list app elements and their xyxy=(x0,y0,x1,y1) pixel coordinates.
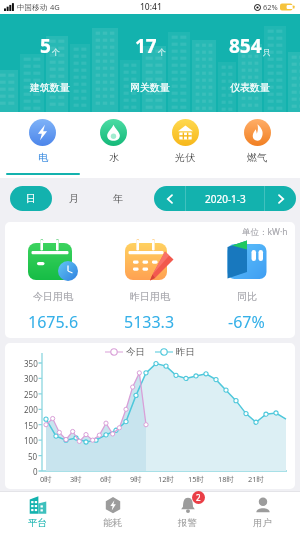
staticText: 1675.6 xyxy=(28,311,79,333)
staticText: 燃气 xyxy=(247,151,267,164)
staticText: 100 xyxy=(24,435,38,446)
staticText: 个 xyxy=(158,47,166,57)
staticText: 4G xyxy=(50,2,60,12)
staticText: 用户 xyxy=(253,517,272,529)
staticText: 仪表数量 xyxy=(230,81,270,94)
staticText: 150 xyxy=(24,420,38,431)
staticText: 网关数量 xyxy=(130,81,170,94)
button[interactable]: Next day xyxy=(265,186,296,211)
staticText: 建筑数量 xyxy=(30,81,70,94)
button[interactable]: 能耗 xyxy=(75,492,150,533)
button[interactable]: 日 xyxy=(10,186,52,211)
staticText: 电 xyxy=(38,151,48,164)
staticText: 350 xyxy=(24,358,38,369)
staticText: 50 xyxy=(28,451,38,462)
staticText: 62% xyxy=(263,2,278,12)
staticText: 854 xyxy=(229,33,262,59)
button[interactable]: 同比 xyxy=(198,222,295,338)
staticText: 月 xyxy=(69,192,79,205)
staticText: 250 xyxy=(24,389,38,400)
staticText: 0 xyxy=(33,466,38,477)
staticText: 今日 xyxy=(126,346,145,358)
staticText: 光伏 xyxy=(175,151,195,164)
button[interactable]: 今日用电 xyxy=(5,222,101,338)
staticText: 年 xyxy=(113,192,123,205)
staticText: 3时 xyxy=(70,474,82,484)
staticText: 只 xyxy=(263,47,271,57)
button[interactable]: 年 xyxy=(96,186,140,211)
button[interactable]: 燃气 xyxy=(221,112,293,178)
button[interactable]: 2020-1-3 xyxy=(186,186,264,211)
staticText: 300 xyxy=(24,373,38,384)
staticText: 2020-1-3 xyxy=(205,192,246,206)
staticText: 日 xyxy=(26,192,36,205)
staticText: 17 xyxy=(135,33,157,59)
staticText: 同比 xyxy=(237,290,257,303)
button[interactable]: 月 xyxy=(52,186,96,211)
staticText: 今日用电 xyxy=(33,290,73,303)
button[interactable]: 用户 xyxy=(225,492,300,533)
staticText: 0时 xyxy=(40,474,52,484)
staticText: 6时 xyxy=(100,474,112,484)
staticText: 个 xyxy=(52,47,60,57)
staticText: 21时 xyxy=(248,474,265,484)
staticText: 10:41 xyxy=(140,1,162,13)
staticText: 水 xyxy=(109,151,119,164)
button[interactable]: 电 xyxy=(7,112,78,178)
staticText: 2 xyxy=(196,492,201,503)
staticText: 18时 xyxy=(218,474,235,484)
staticText: 9时 xyxy=(130,474,142,484)
staticText: 5 xyxy=(40,33,51,59)
staticText: 昨日用电 xyxy=(130,290,170,303)
staticText: -67% xyxy=(228,311,265,333)
button[interactable]: 昨日用电 xyxy=(101,222,198,338)
button[interactable]: 2 xyxy=(150,492,225,533)
staticText: 中国移动 xyxy=(17,3,47,12)
button[interactable]: 水 xyxy=(78,112,149,178)
staticText: 12时 xyxy=(158,474,175,484)
staticText: 单位：kW·h xyxy=(242,226,288,238)
button[interactable]: Previous day xyxy=(154,186,185,211)
staticText: 平台 xyxy=(28,517,47,529)
staticText: 能耗 xyxy=(103,517,122,529)
staticText: 5133.3 xyxy=(124,311,175,333)
button[interactable]: 光伏 xyxy=(149,112,221,178)
staticText: 15时 xyxy=(188,474,205,484)
staticText: 200 xyxy=(24,404,38,415)
button[interactable]: 平台 xyxy=(0,492,75,533)
staticText: 昨日 xyxy=(176,346,195,358)
staticText: 报警 xyxy=(178,517,197,529)
